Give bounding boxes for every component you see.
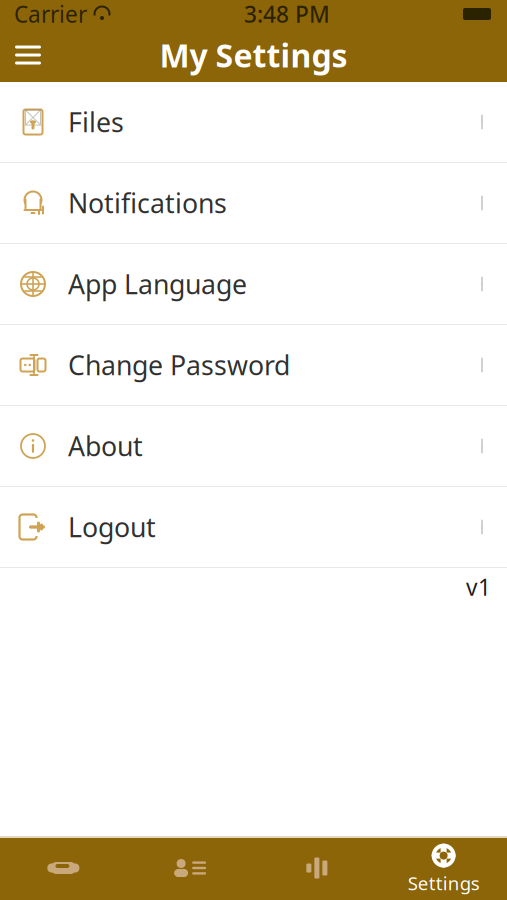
staticText: v1 bbox=[466, 572, 491, 602]
button[interactable]: Deals bbox=[0, 838, 127, 900]
staticText: App Language bbox=[68, 266, 247, 302]
button[interactable]: Change Password bbox=[0, 325, 507, 406]
button[interactable]: Menu bbox=[0, 28, 56, 82]
staticText: Settings bbox=[408, 871, 480, 895]
staticText: My Settings bbox=[159, 34, 347, 76]
staticText: About bbox=[68, 428, 143, 464]
staticText: Logout bbox=[68, 509, 156, 545]
staticText: Change Password bbox=[68, 347, 290, 383]
staticText: Carrier bbox=[14, 0, 87, 29]
staticText: Files bbox=[68, 104, 124, 140]
button[interactable]: Notifications bbox=[0, 163, 507, 244]
button[interactable]: Contacts bbox=[127, 838, 254, 900]
button[interactable]: Settings bbox=[380, 838, 507, 900]
button[interactable]: App Language bbox=[0, 244, 507, 325]
button[interactable]: Logout bbox=[0, 487, 507, 568]
image bbox=[25, 109, 41, 125]
button[interactable]: Files bbox=[0, 82, 507, 163]
staticText: 3:48 PM bbox=[244, 0, 330, 29]
staticText: Notifications bbox=[68, 185, 227, 221]
button[interactable]: Reports bbox=[253, 838, 380, 900]
button[interactable]: About bbox=[0, 406, 507, 487]
